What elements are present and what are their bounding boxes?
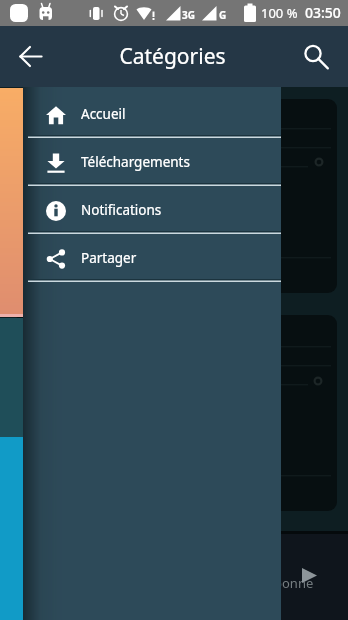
- button[interactable]: Search: [298, 40, 332, 74]
- staticText: 100 %: [261, 4, 298, 22]
- staticText: Catégories: [119, 42, 226, 71]
- button[interactable]: Accueil: [23, 90, 281, 138]
- staticText: Accueil: [81, 105, 126, 123]
- staticText: Notifications: [81, 201, 162, 219]
- button[interactable]: Partager: [23, 234, 281, 282]
- staticText: Téléchargements: [81, 153, 190, 171]
- staticText: 3G: [182, 8, 195, 22]
- button[interactable]: Notifications: [23, 186, 281, 234]
- staticText: bonne: [274, 574, 314, 592]
- staticText: 03:50: [305, 3, 341, 22]
- staticText: Partager: [81, 249, 137, 267]
- button[interactable]: Back: [14, 39, 48, 73]
- staticText: G: [219, 8, 227, 22]
- button[interactable]: Téléchargements: [23, 138, 281, 186]
